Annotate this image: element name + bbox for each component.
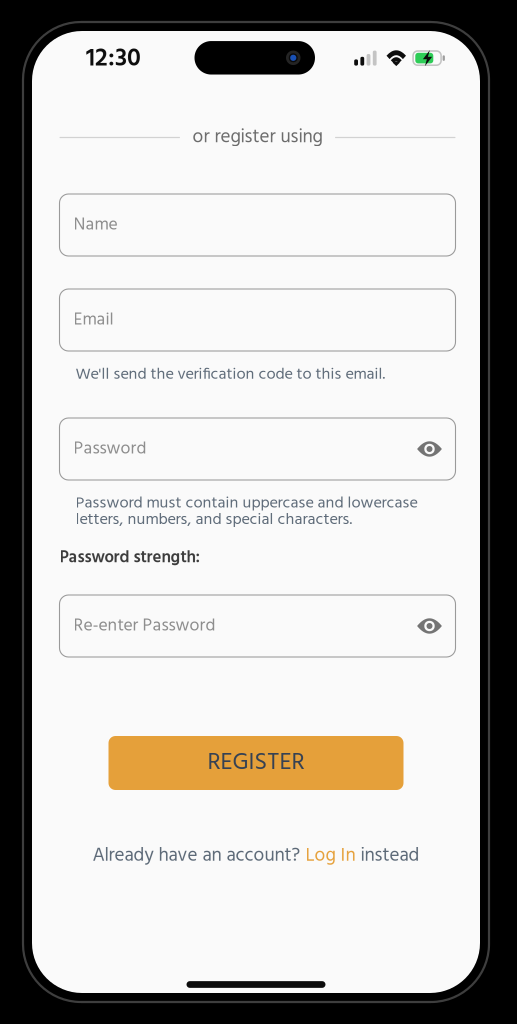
staticText: REGISTER (207, 744, 304, 782)
button[interactable]: Email (59, 289, 455, 351)
button[interactable]: Re-enter Password (59, 595, 455, 657)
staticText: Already have an account? (92, 841, 305, 871)
button[interactable]: Name (59, 194, 455, 256)
staticText: Password strength: (59, 545, 199, 571)
button[interactable]: REGISTER (108, 736, 403, 790)
button[interactable]: Password (59, 418, 455, 480)
staticText: or register using (192, 122, 322, 153)
button[interactable]: Already have an account? (92, 845, 419, 867)
staticText: letters, numbers, and special characters… (75, 507, 352, 533)
staticText: We'll send the verification code to this… (75, 361, 385, 387)
staticText: Re-enter Password (73, 612, 215, 640)
staticText: Password (73, 435, 146, 463)
staticText: Name (73, 211, 117, 239)
staticText: instead (355, 841, 419, 871)
staticText: Email (73, 306, 113, 334)
staticText: Log In (305, 841, 355, 871)
staticText: Password must contain uppercase and lowe… (75, 490, 417, 516)
staticText: 12:30 (86, 39, 141, 79)
